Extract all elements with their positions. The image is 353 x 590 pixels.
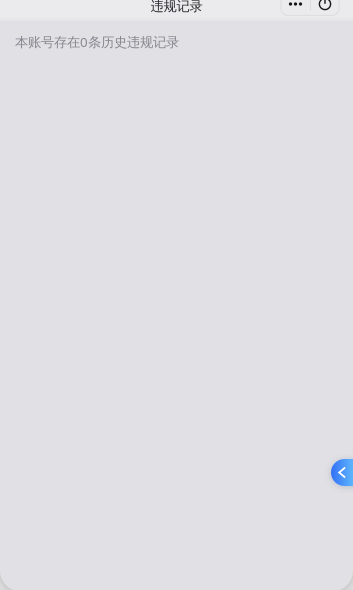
button[interactable]: Close mini program (311, 0, 339, 15)
staticText: 违规记录 (150, 0, 202, 15)
staticText: 本账号存在0条历史违规记录 (15, 33, 179, 51)
button[interactable]: Back (331, 459, 353, 486)
button[interactable]: More options (281, 0, 310, 15)
